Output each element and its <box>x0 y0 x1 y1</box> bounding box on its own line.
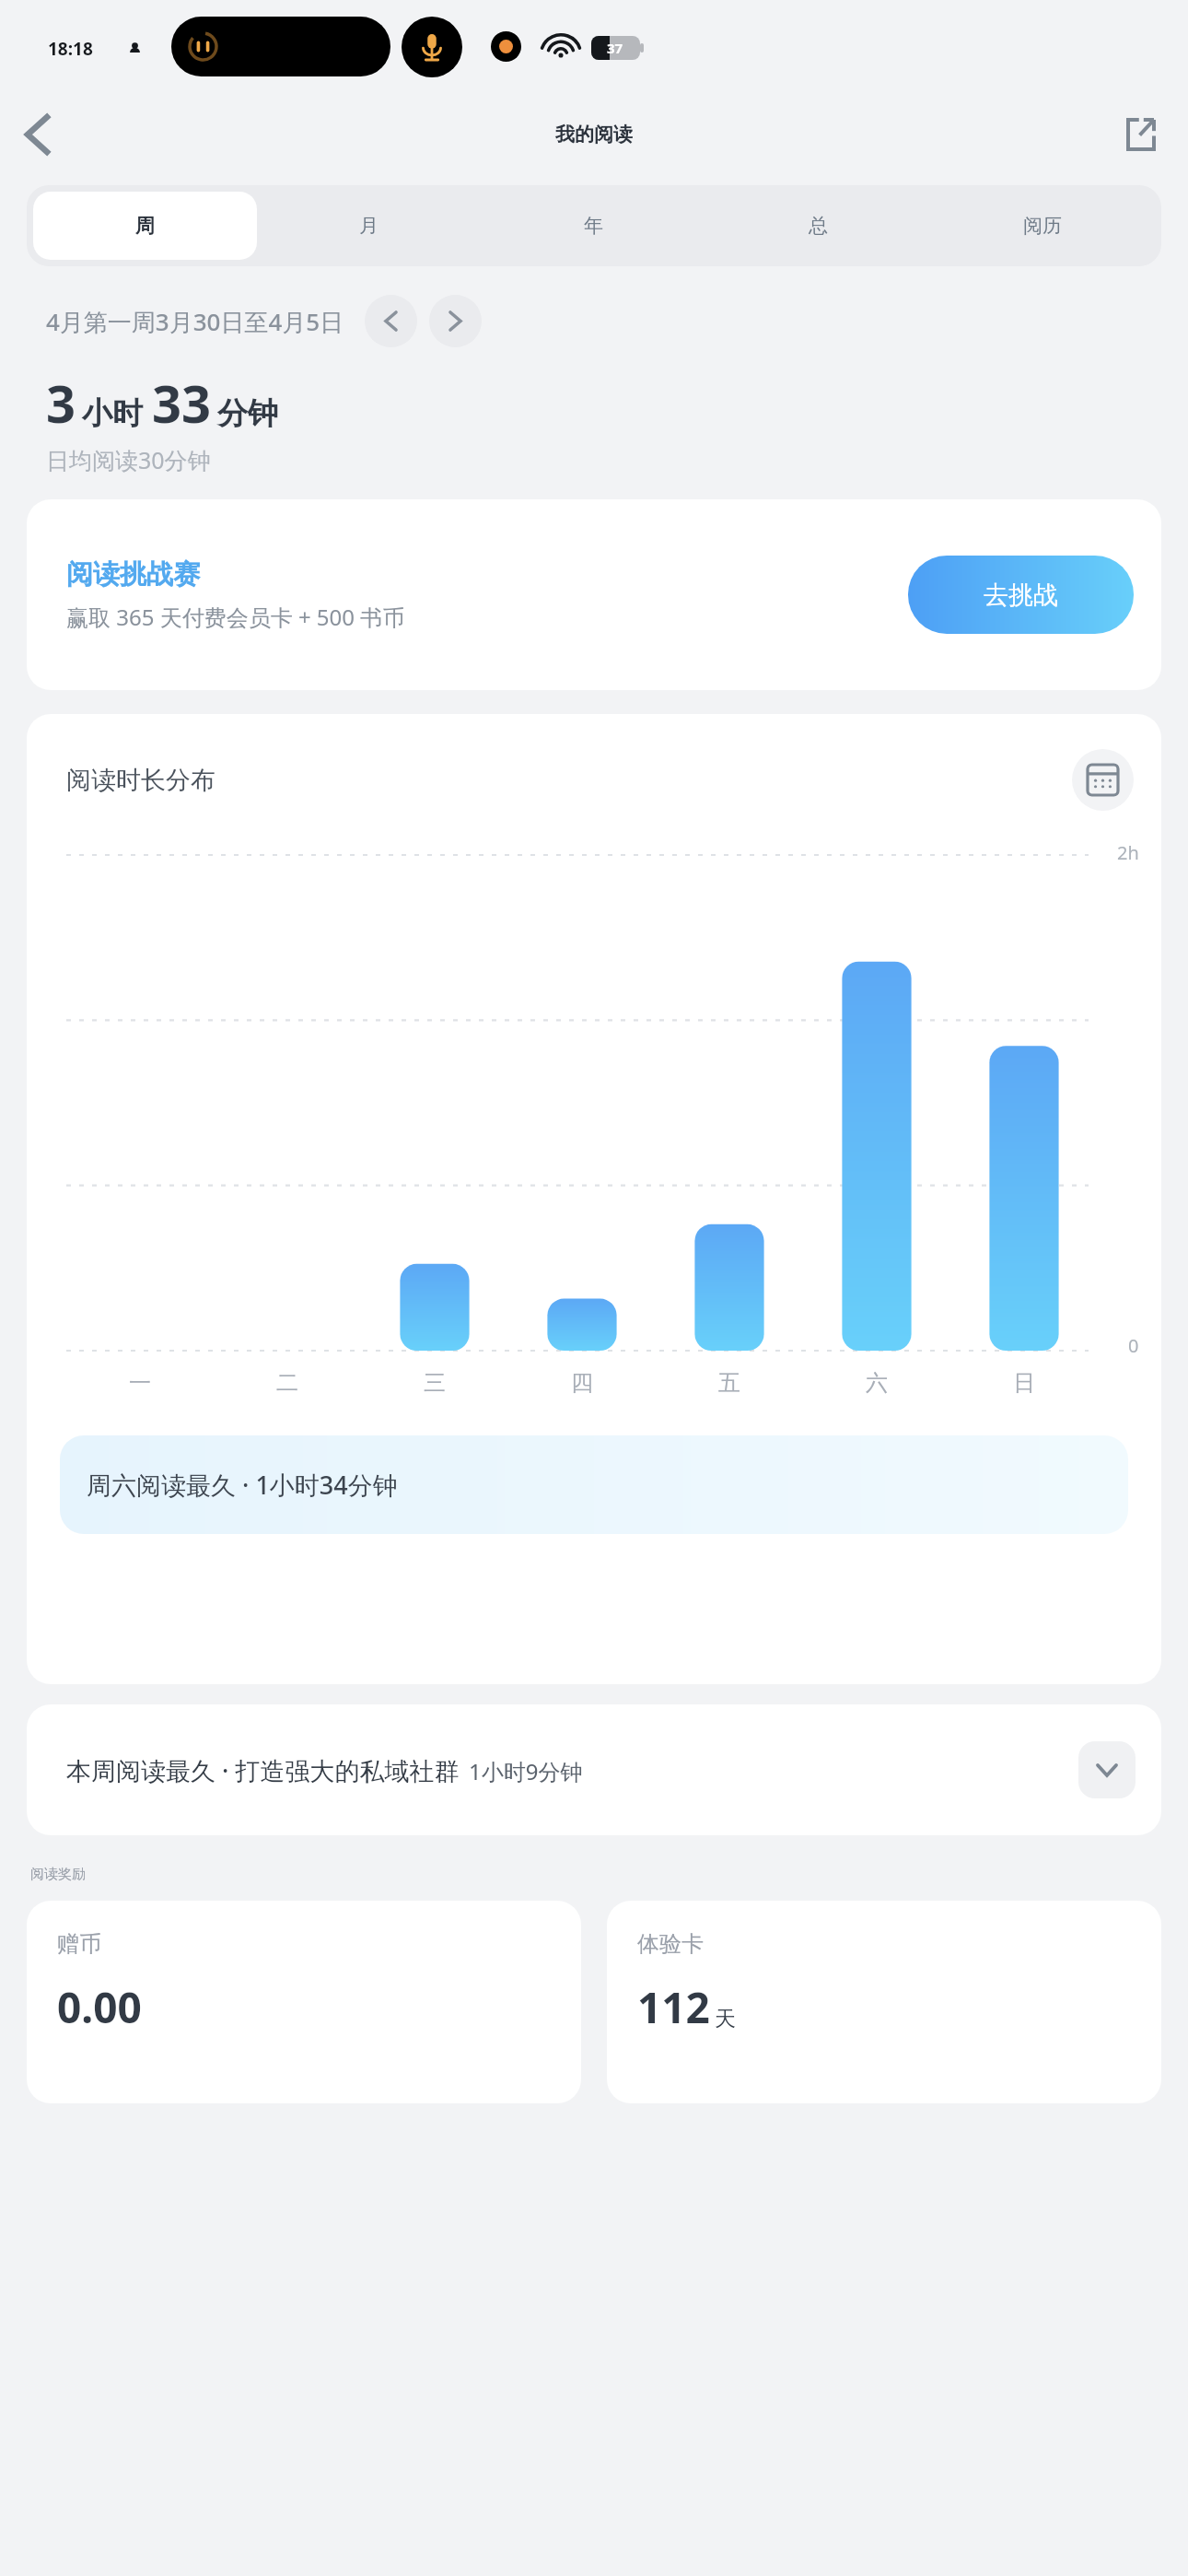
staticText: 33 <box>152 368 212 438</box>
staticText: 18:18 <box>48 37 93 61</box>
staticText: 三 <box>424 1369 446 1397</box>
staticText: 本周阅读最久 · 打造强大的私域社群 <box>66 1753 460 1787</box>
staticText: 日 <box>1013 1369 1035 1397</box>
staticText: 五 <box>718 1369 740 1397</box>
staticText: 分钟 <box>217 394 278 433</box>
staticText: 赠币 <box>57 1930 101 1958</box>
staticText: 周六阅读最久 · 1小时34分钟 <box>87 1468 398 1502</box>
button[interactable]: Previous week <box>365 295 417 347</box>
button[interactable]: 去挑战 <box>908 556 1134 634</box>
staticText: 去挑战 <box>984 580 1058 611</box>
button[interactable]: Expand <box>1078 1741 1136 1798</box>
staticText: 0 <box>1128 1333 1139 1358</box>
button[interactable]: 阅历 <box>930 192 1155 260</box>
staticText: 3 <box>46 368 76 438</box>
staticText: 0.00 <box>57 1978 142 2036</box>
button[interactable]: 赠币 <box>27 1901 581 2103</box>
staticText: 1小时9分钟 <box>469 1756 583 1786</box>
button[interactable]: Back <box>0 98 74 171</box>
staticText: 4月第一周3月30日至4月5日 <box>46 305 344 338</box>
staticText: 年 <box>584 214 603 238</box>
button[interactable]: 周 <box>33 192 257 260</box>
staticText: 小时 <box>82 394 143 433</box>
staticText: 阅历 <box>1023 214 1062 238</box>
staticText: 阅读奖励 <box>30 1866 86 1883</box>
staticText: 112 <box>637 1978 710 2036</box>
button[interactable]: Calendar <box>1072 749 1134 811</box>
button[interactable]: Share <box>1114 108 1168 161</box>
button[interactable]: 本周阅读最久 · 打造强大的私域社群 <box>27 1704 1161 1835</box>
staticText: 六 <box>866 1369 888 1397</box>
button[interactable]: 周六阅读最久 · 1小时34分钟 <box>60 1435 1128 1534</box>
staticText: 体验卡 <box>637 1930 704 1958</box>
button[interactable]: Next week <box>429 295 482 347</box>
button[interactable]: 年 <box>481 192 705 260</box>
staticText: 37 <box>607 39 623 57</box>
staticText: 总 <box>809 214 828 238</box>
button[interactable]: 阅读挑战赛 <box>27 499 1161 690</box>
staticText: 二 <box>276 1369 298 1397</box>
staticText: 我的阅读 <box>555 123 633 146</box>
button[interactable]: 体验卡 <box>607 1901 1161 2103</box>
button[interactable]: 总 <box>705 192 930 260</box>
staticText: 赢取 365 天付费会员卡 + 500 书币 <box>66 602 405 632</box>
staticText: 日均阅读30分钟 <box>46 444 211 475</box>
staticText: 天 <box>715 2006 736 2032</box>
button[interactable]: 月 <box>257 192 481 260</box>
staticText: 一 <box>129 1369 151 1397</box>
staticText: 阅读挑战赛 <box>66 557 200 591</box>
staticText: 四 <box>571 1369 593 1397</box>
staticText: 2h <box>1117 840 1139 865</box>
staticText: 月 <box>359 214 379 238</box>
staticText: 阅读时长分布 <box>66 765 215 796</box>
staticText: 周 <box>135 214 155 238</box>
